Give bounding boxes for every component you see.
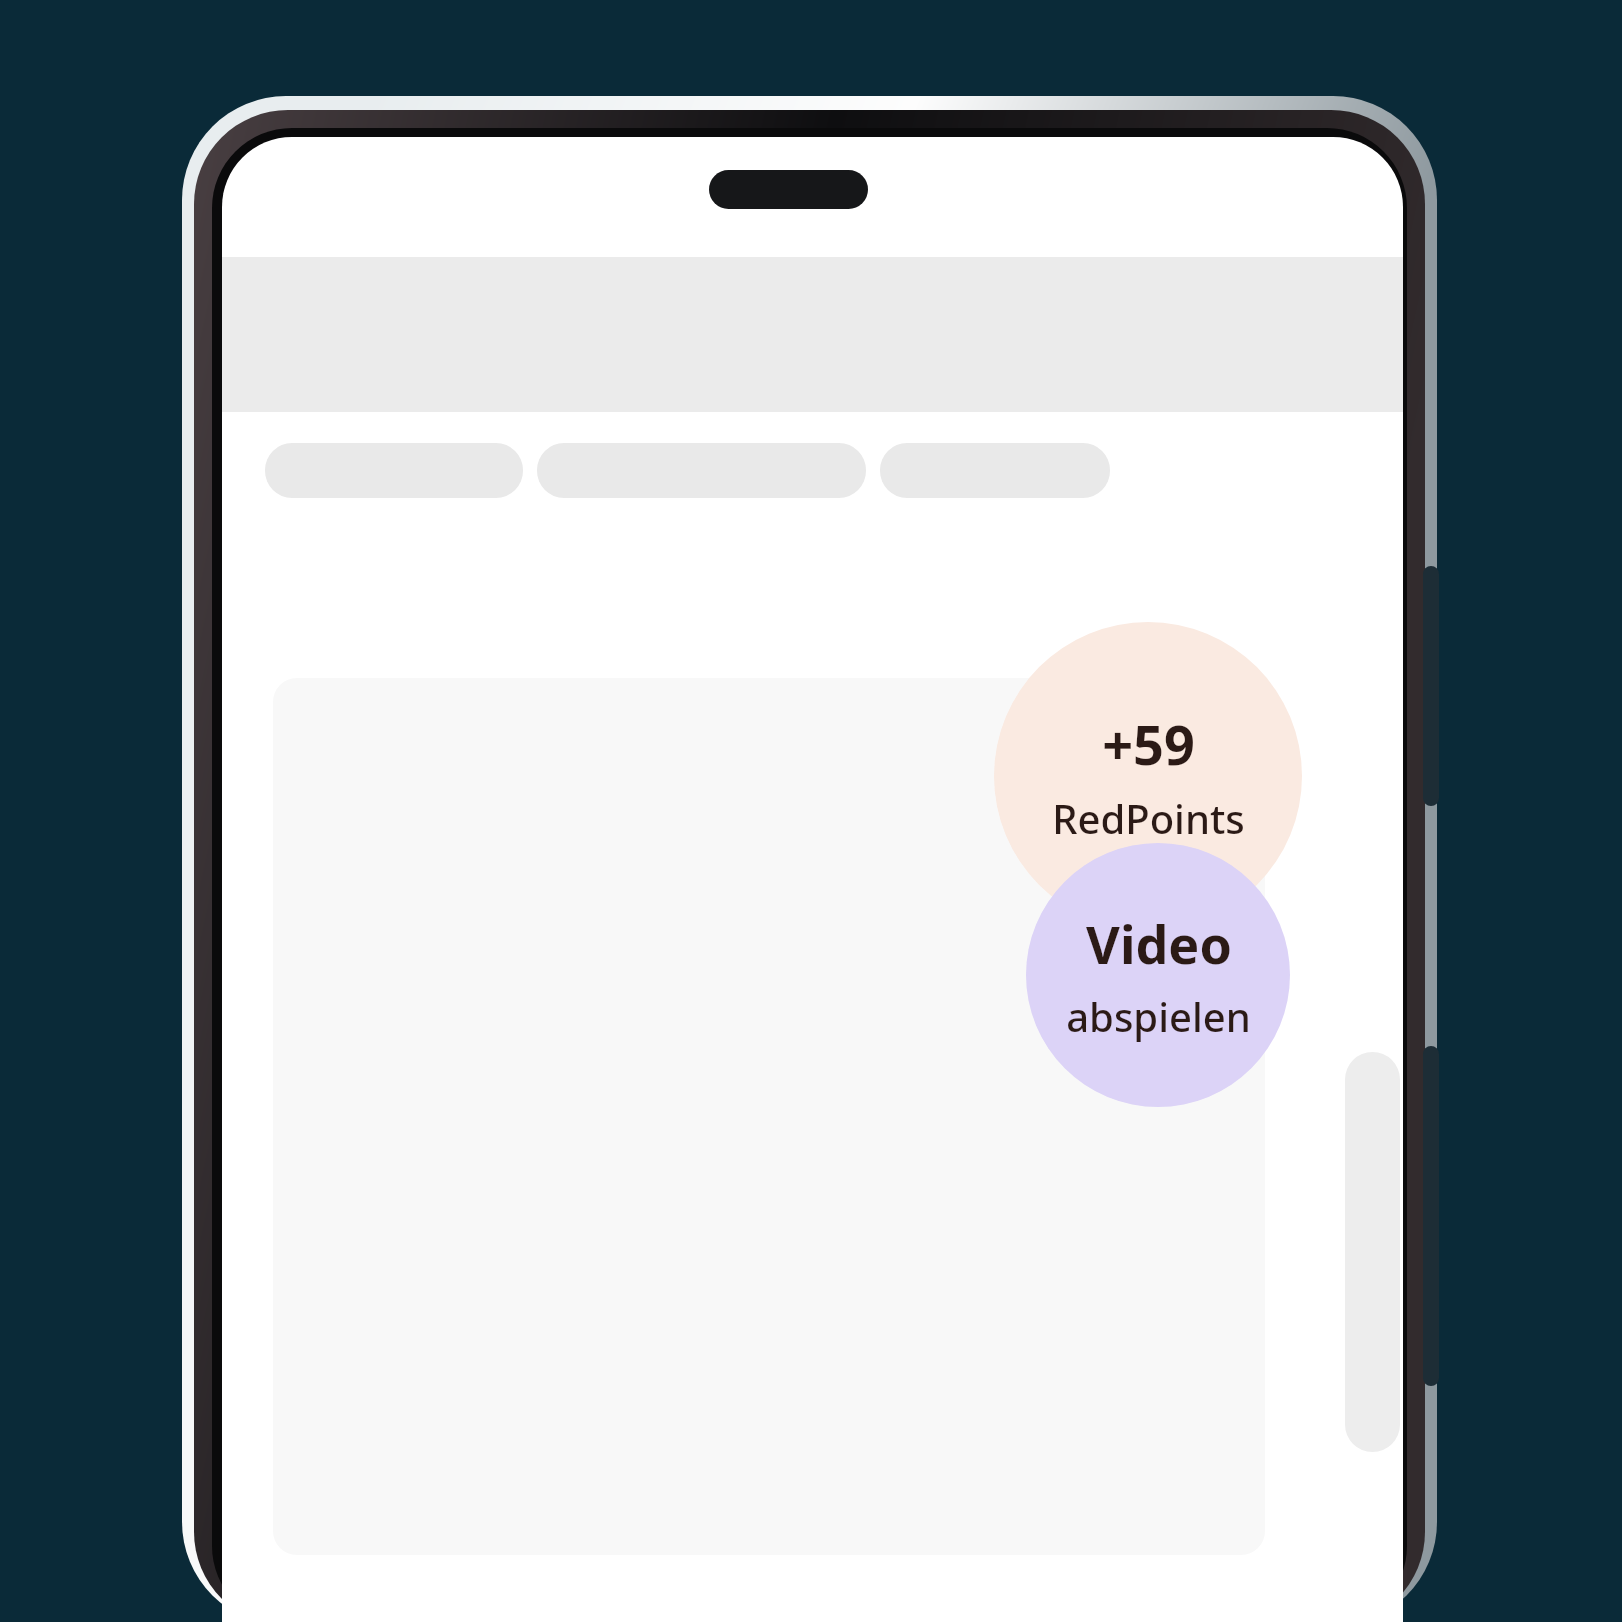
staticText: +59 [1102, 707, 1195, 781]
button[interactable] [265, 443, 523, 498]
button[interactable] [273, 678, 1265, 1555]
button[interactable] [880, 443, 1110, 498]
button[interactable]: 59 RedPoints [994, 622, 1302, 930]
staticText: Video [1086, 908, 1232, 979]
button[interactable]: Video abspielen [1026, 843, 1290, 1107]
staticText: RedPoints [1052, 791, 1245, 845]
staticText: abspielen [1066, 989, 1251, 1043]
button[interactable] [537, 443, 866, 498]
